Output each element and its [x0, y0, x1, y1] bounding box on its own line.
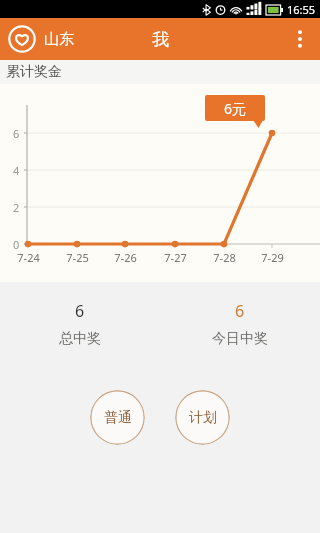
staticText: 7-27 [164, 250, 187, 265]
button[interactable]: 6 [160, 300, 320, 348]
button[interactable]: 6 [0, 300, 160, 348]
staticText: 普通 [104, 409, 132, 427]
staticText: 7-28 [213, 250, 236, 265]
button[interactable]: 计划 [175, 390, 230, 445]
staticText: 6 [13, 126, 20, 141]
staticText: 6 [75, 300, 85, 322]
staticText: 山东 [44, 30, 74, 49]
staticText: 7-25 [66, 250, 89, 265]
button[interactable]: 山东 [8, 25, 74, 53]
staticText: 7-26 [114, 250, 137, 265]
staticText: 6元 [224, 99, 247, 118]
button[interactable]: 普通 [90, 390, 145, 445]
staticText: 总中奖 [59, 330, 101, 348]
staticText: 累计奖金 [6, 63, 62, 81]
staticText: 计划 [189, 409, 217, 427]
staticText: 今日中奖 [212, 330, 268, 348]
staticText: 2 [13, 200, 20, 215]
staticText: 0 [13, 237, 20, 252]
staticText: 7-29 [261, 250, 284, 265]
staticText: 我 [152, 29, 169, 50]
button[interactable]: More options [280, 19, 320, 59]
staticText: 16:55 [287, 2, 316, 17]
staticText: 7-24 [17, 250, 40, 265]
staticText: 6 [235, 300, 245, 322]
staticText: 4 [13, 163, 20, 178]
